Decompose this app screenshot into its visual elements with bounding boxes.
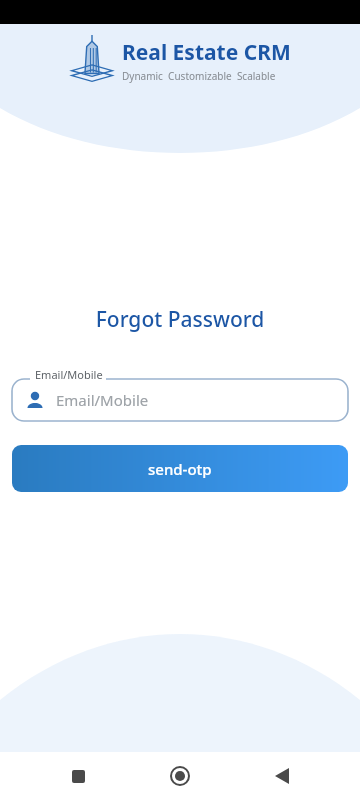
button[interactable]: Recent apps <box>54 752 102 800</box>
button[interactable]: Home <box>156 752 204 800</box>
staticText: Email/Mobile <box>35 367 103 382</box>
staticText: Email/Mobile <box>56 390 149 410</box>
staticText: Real Estate CRM <box>122 38 291 67</box>
button[interactable]: send-otp <box>12 445 348 492</box>
staticText: Dynamic Customizable Scalable <box>122 69 276 83</box>
button[interactable]: Back <box>258 752 306 800</box>
button[interactable]: Email/Mobile <box>12 371 348 421</box>
staticText: Forgot Password <box>0 305 360 334</box>
staticText: send-otp <box>148 459 212 479</box>
